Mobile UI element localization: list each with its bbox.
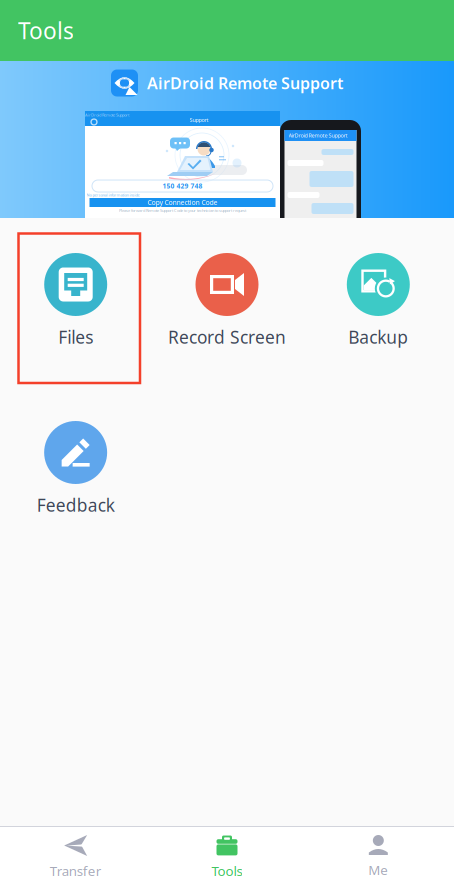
staticText: AirDroid Remote Support xyxy=(85,112,129,118)
staticText: Tools xyxy=(18,15,74,45)
button[interactable]: Record Screen xyxy=(151,218,303,386)
button[interactable]: Me xyxy=(303,827,454,887)
staticText: Please forward Remote Support Code to yo… xyxy=(119,208,246,213)
staticText: No personal information inside xyxy=(86,192,139,198)
staticText: Me xyxy=(368,861,388,879)
button[interactable]: Transfer xyxy=(0,827,151,887)
button[interactable]: Tools xyxy=(151,827,303,887)
button[interactable]: Files xyxy=(0,218,151,386)
staticText: AirDroid Remote Support xyxy=(147,72,343,94)
staticText: Support xyxy=(189,116,208,124)
staticText: AirDroid Remote Support xyxy=(288,132,347,139)
staticText: Backup xyxy=(348,325,408,348)
staticText: Record Screen xyxy=(168,325,286,348)
button[interactable]: Feedback xyxy=(0,386,151,554)
staticText: Transfer xyxy=(50,862,102,880)
button[interactable]: Backup xyxy=(303,218,454,386)
staticText: 150 429 748 xyxy=(162,182,202,190)
staticText: Tools xyxy=(211,862,242,880)
staticText: Copy Connection Code xyxy=(147,198,217,207)
staticText: Feedback xyxy=(37,493,115,516)
staticText: Files xyxy=(58,325,93,348)
